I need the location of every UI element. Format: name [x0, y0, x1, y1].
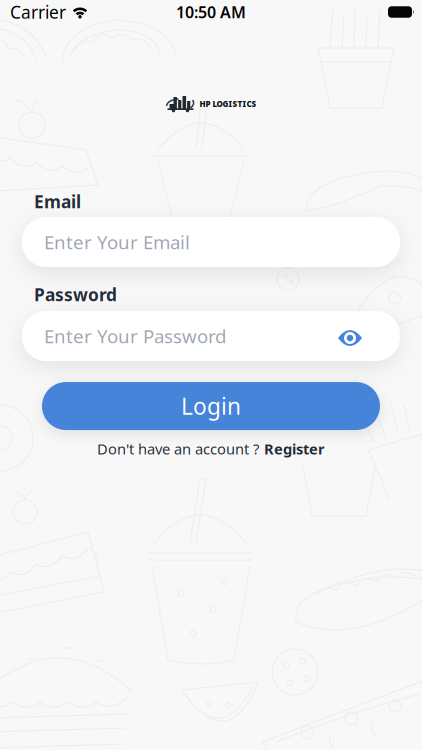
button[interactable]: Register — [264, 439, 325, 458]
button[interactable]: Enter Your Email — [22, 217, 400, 267]
staticText: HP LOGISTICS — [199, 99, 256, 109]
button[interactable]: Show password — [338, 328, 400, 344]
button[interactable]: Enter Your Password — [22, 311, 400, 361]
staticText: Email — [34, 190, 81, 213]
staticText: Don't have an account ? — [97, 439, 259, 458]
staticText: Password — [34, 283, 117, 306]
button[interactable]: Login — [42, 382, 380, 430]
staticText: 10:50 AM — [176, 1, 246, 23]
staticText: Enter Your Password — [44, 324, 226, 348]
staticText: Login — [181, 391, 241, 421]
staticText: Enter Your Email — [44, 230, 190, 254]
staticText: Register — [264, 439, 325, 458]
staticText: Carrier — [10, 0, 66, 23]
